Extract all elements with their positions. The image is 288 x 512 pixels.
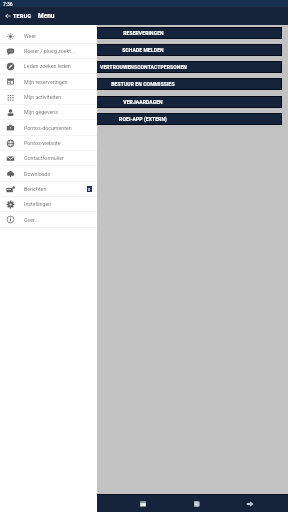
staticText: Pontos-documenten bbox=[24, 125, 92, 131]
button[interactable]: Mijn reserveringen bbox=[0, 74, 97, 90]
button[interactable]: SCHADE MELDEN bbox=[5, 45, 281, 55]
button[interactable]: Leden zoeken leden bbox=[0, 59, 97, 74]
staticText: Berichten bbox=[24, 186, 87, 192]
button[interactable]: ROEI-APP (EXTERN) bbox=[5, 114, 281, 124]
staticText: SCHADE MELDEN bbox=[122, 47, 164, 53]
staticText: 7:36 bbox=[3, 1, 13, 7]
staticText: Roeier / ploeg zoekt... bbox=[24, 48, 92, 54]
staticText: Contactformulier bbox=[24, 155, 92, 161]
staticText: Mijn activiteiten bbox=[24, 94, 92, 100]
button[interactable]: Mijn gegevens bbox=[0, 105, 97, 120]
staticText: Mijn gegevens bbox=[24, 109, 92, 115]
button[interactable]: Instellingen bbox=[0, 197, 97, 212]
button[interactable]: Agenda bbox=[123, 495, 163, 512]
button[interactable]: Delen bbox=[230, 495, 270, 512]
staticText: BESTUUR EN COMMISSIES bbox=[111, 81, 175, 87]
staticText: VERJAARDAGEN bbox=[123, 99, 163, 105]
button[interactable]: TERUG bbox=[0, 7, 36, 25]
staticText: Menu bbox=[38, 12, 55, 20]
staticText: Mijn reserveringen bbox=[24, 79, 92, 85]
button[interactable]: Over... bbox=[0, 212, 97, 228]
staticText: Pontos-website bbox=[24, 140, 92, 146]
button[interactable]: Pontos-documenten bbox=[0, 120, 97, 136]
button[interactable]: Berichten bbox=[0, 182, 97, 197]
button[interactable]: RESERVERINGEN bbox=[5, 28, 281, 38]
button[interactable]: Downloads bbox=[0, 166, 97, 182]
staticText: Instellingen bbox=[24, 201, 92, 207]
staticText: VERTROUWENSCONTACTPERSONEN bbox=[100, 64, 187, 70]
button[interactable]: Contactformulier bbox=[0, 151, 97, 166]
staticText: Downloads bbox=[24, 171, 92, 177]
staticText: Over... bbox=[24, 217, 92, 223]
staticText: RESERVERINGEN bbox=[123, 30, 164, 36]
button[interactable]: Mijn activiteiten bbox=[0, 90, 97, 105]
button[interactable]: VERTROUWENSCONTACTPERSONEN bbox=[5, 62, 281, 72]
button[interactable]: Weer bbox=[0, 29, 97, 44]
staticText: Leden zoeken leden bbox=[24, 63, 92, 69]
button[interactable]: VERJAARDAGEN bbox=[5, 97, 281, 107]
button[interactable]: BESTUUR EN COMMISSIES bbox=[5, 79, 281, 89]
staticText: Weer bbox=[24, 33, 92, 39]
staticText: TERUG bbox=[13, 13, 32, 19]
button[interactable]: Documenten bbox=[177, 495, 217, 512]
staticText: 0 bbox=[88, 187, 91, 192]
staticText: ROEI-APP (EXTERN) bbox=[119, 116, 167, 122]
button[interactable]: Roeier / ploeg zoekt... bbox=[0, 44, 97, 59]
button[interactable]: Pontos-website bbox=[0, 136, 97, 151]
